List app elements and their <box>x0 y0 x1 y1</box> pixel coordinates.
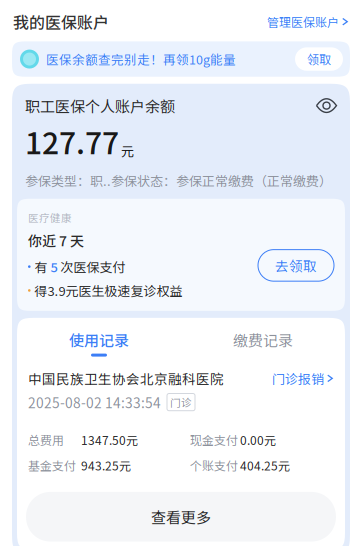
button[interactable]: 医保余额查完别走！再领10g能量 <box>12 41 350 77</box>
staticText: 5 <box>51 257 58 276</box>
staticText: 404.25元 <box>240 456 290 474</box>
staticText: 现金支付 <box>190 431 238 448</box>
staticText: 你近 7 天 <box>28 230 84 250</box>
staticText: 个账支付 <box>190 456 238 474</box>
staticText: 基金支付 <box>28 456 76 474</box>
staticText: 管理医保账户 <box>267 13 339 30</box>
staticText: 缴费记录 <box>233 329 293 351</box>
staticText: 领取 <box>307 50 331 68</box>
staticText: 门诊 <box>170 394 192 410</box>
button[interactable]: 去领取 <box>258 250 334 281</box>
staticText: 有 <box>35 257 51 276</box>
staticText: 总费用 <box>28 431 64 448</box>
button[interactable]: 使用记录 <box>17 329 181 357</box>
staticText: 医保余额查完别走！再领10g能量 <box>46 50 236 68</box>
staticText: 元 <box>121 141 134 160</box>
button[interactable]: 查看更多 <box>26 492 336 542</box>
staticText: 我的医保账户 <box>13 10 109 33</box>
button[interactable]: 门诊报销 <box>272 369 334 388</box>
staticText: 职工医保个人账户余额 <box>25 95 175 116</box>
staticText: 得3.9元医生极速复诊权益 <box>35 281 183 300</box>
staticText: 1347.50元 <box>81 431 138 448</box>
staticText: 中国民族卫生协会北京融科医院 <box>28 369 224 388</box>
button[interactable]: 管理医保账户 <box>267 9 349 34</box>
staticText: 参保类型：职..参保状态：参保正常缴费（正常缴费） <box>25 171 332 190</box>
staticText: 医疗健康 <box>28 210 72 225</box>
staticText: 943.25元 <box>81 456 131 474</box>
staticText: 查看更多 <box>151 506 211 528</box>
staticText: 127.77 <box>25 119 119 163</box>
button[interactable]: 缴费记录 <box>181 329 345 357</box>
staticText: 使用记录 <box>69 329 129 351</box>
staticText: 0.00元 <box>240 431 276 448</box>
staticText: 门诊报销 <box>272 369 324 388</box>
staticText: 2025-08-02 14:33:54 <box>28 392 161 412</box>
button[interactable]: 显示余额 <box>316 99 337 112</box>
staticText: 去领取 <box>275 256 317 275</box>
staticText: 次医保支付 <box>58 257 126 276</box>
